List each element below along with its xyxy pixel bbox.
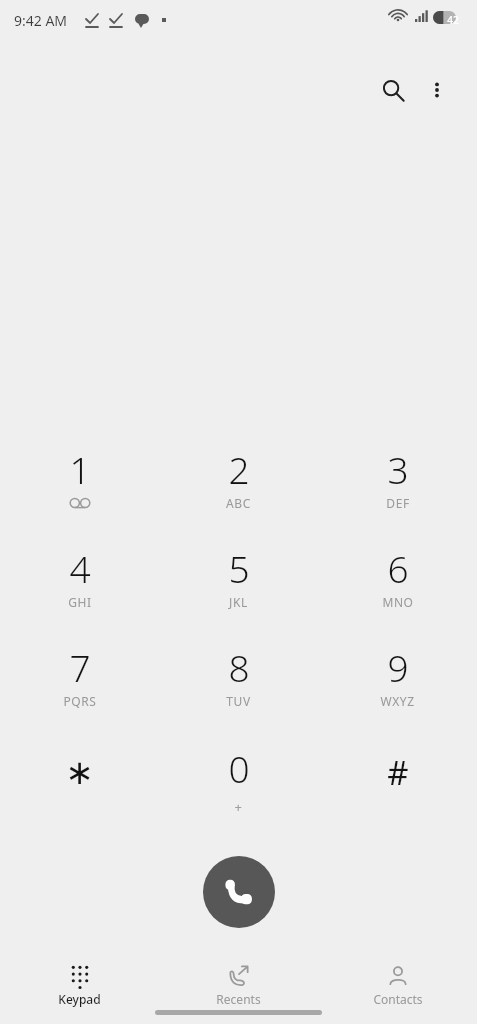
- button[interactable]: Recents: [159, 957, 318, 1009]
- staticText: 2: [228, 444, 250, 494]
- button[interactable]: 6: [318, 542, 477, 639]
- staticText: Contacts: [373, 991, 423, 1007]
- staticText: MNO: [382, 594, 414, 610]
- button[interactable]: #: [318, 742, 477, 839]
- staticText: Recents: [216, 991, 261, 1007]
- staticText: WXYZ: [380, 693, 415, 709]
- staticText: 7: [69, 642, 91, 692]
- button[interactable]: Call: [203, 856, 275, 928]
- staticText: DEF: [386, 495, 410, 511]
- button[interactable]: 2: [159, 443, 318, 540]
- button[interactable]: 8: [159, 641, 318, 738]
- button[interactable]: 3: [318, 443, 477, 540]
- staticText: TUV: [226, 693, 251, 709]
- staticText: Keypad: [58, 991, 101, 1007]
- button[interactable]: 9: [318, 641, 477, 738]
- staticText: 9: [387, 642, 409, 692]
- staticText: +: [234, 798, 243, 816]
- button[interactable]: 7: [0, 641, 159, 738]
- staticText: 9:42 AM: [14, 11, 68, 30]
- staticText: #: [387, 750, 409, 795]
- staticText: 6: [387, 543, 409, 593]
- button[interactable]: 4: [0, 542, 159, 639]
- staticText: 5: [228, 543, 250, 593]
- staticText: 8: [228, 642, 250, 692]
- staticText: JKL: [229, 594, 248, 610]
- staticText: 42: [442, 13, 464, 27]
- staticText: PQRS: [63, 693, 97, 709]
- staticText: 4: [69, 543, 91, 593]
- button[interactable]: More options: [415, 68, 459, 112]
- staticText: GHI: [68, 594, 92, 610]
- button[interactable]: 1: [0, 443, 159, 540]
- staticText: 1: [69, 444, 91, 494]
- staticText: 3: [387, 444, 409, 494]
- staticText: ABC: [226, 495, 251, 511]
- staticText: 0: [228, 743, 250, 793]
- button[interactable]: 0: [159, 742, 318, 839]
- button[interactable]: 5: [159, 542, 318, 639]
- button[interactable]: Search: [369, 66, 417, 114]
- staticText: ∗: [65, 752, 94, 792]
- button[interactable]: ∗: [0, 742, 159, 839]
- button[interactable]: Contacts: [318, 957, 477, 1009]
- button[interactable]: Keypad: [0, 957, 159, 1009]
